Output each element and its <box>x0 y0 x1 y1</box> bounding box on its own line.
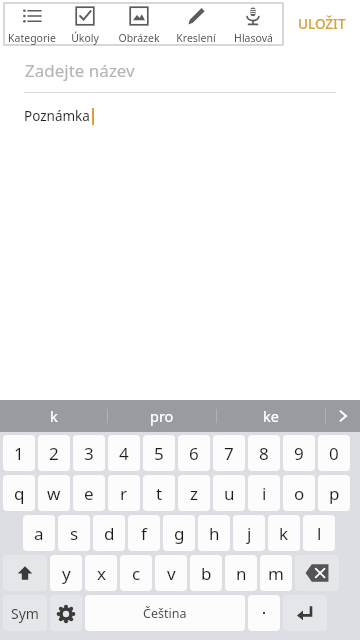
staticText: 0 <box>329 442 339 465</box>
staticText: 3 <box>84 442 94 465</box>
button[interactable]: t <box>143 475 175 511</box>
button[interactable]: 0 <box>318 435 350 471</box>
button[interactable]: k <box>268 515 300 551</box>
button[interactable]: k <box>0 400 107 432</box>
button[interactable]: Hlasová <box>225 3 281 45</box>
button[interactable]: Kategorie <box>4 3 60 45</box>
staticText: l <box>317 522 322 545</box>
button[interactable]: e <box>73 475 105 511</box>
button[interactable]: Shift <box>3 555 47 591</box>
staticText: Sym <box>11 604 39 623</box>
button[interactable]: Obrázek <box>110 3 167 45</box>
staticText: n <box>236 562 247 585</box>
button[interactable]: Enter <box>283 595 327 631</box>
staticText: a <box>34 522 44 545</box>
staticText: 1 <box>14 442 24 465</box>
staticText: Zadejte název <box>25 59 135 82</box>
staticText: r <box>120 482 128 505</box>
staticText: z <box>190 482 198 505</box>
button[interactable]: p <box>318 475 350 511</box>
button[interactable]: y <box>50 555 82 591</box>
button[interactable]: Kreslení <box>167 3 225 45</box>
staticText: Čeština <box>143 605 187 622</box>
staticText: c <box>132 562 141 585</box>
button[interactable]: j <box>233 515 265 551</box>
button[interactable]: 7 <box>213 435 245 471</box>
button[interactable]: d <box>93 515 125 551</box>
button[interactable]: Poznámka <box>0 93 360 400</box>
staticText: h <box>209 522 220 545</box>
button[interactable]: x <box>85 555 117 591</box>
staticText: 5 <box>154 442 164 465</box>
staticText: k <box>279 522 289 545</box>
button[interactable]: 8 <box>248 435 280 471</box>
button[interactable]: s <box>58 515 90 551</box>
staticText: 6 <box>189 442 199 465</box>
staticText: 9 <box>294 442 304 465</box>
button[interactable]: z <box>178 475 210 511</box>
button[interactable]: 5 <box>143 435 175 471</box>
button[interactable]: l <box>303 515 335 551</box>
button[interactable]: c <box>120 555 152 591</box>
button[interactable]: 4 <box>108 435 140 471</box>
button[interactable]: a <box>23 515 55 551</box>
staticText: v <box>167 562 176 585</box>
staticText: y <box>62 562 71 585</box>
button[interactable]: Úkoly <box>60 3 110 45</box>
staticText: p <box>329 482 340 505</box>
staticText: o <box>294 482 305 505</box>
button[interactable]: 6 <box>178 435 210 471</box>
button[interactable]: 3 <box>73 435 105 471</box>
button[interactable]: n <box>225 555 257 591</box>
button[interactable]: w <box>38 475 70 511</box>
button[interactable]: Zadejte název <box>0 48 360 92</box>
staticText: w <box>47 482 61 505</box>
button[interactable]: pro <box>108 400 216 432</box>
button[interactable]: i <box>248 475 280 511</box>
staticText: Obrázek <box>118 31 160 45</box>
staticText: ke <box>263 406 279 426</box>
button[interactable]: More suggestions <box>326 400 360 432</box>
button[interactable]: Backspace <box>295 555 339 591</box>
staticText: Úkoly <box>71 31 99 45</box>
staticText: m <box>268 562 284 585</box>
button[interactable]: Keyboard settings <box>50 595 82 631</box>
staticText: e <box>84 482 94 505</box>
staticText: k <box>50 406 58 426</box>
button[interactable]: Čeština <box>85 595 245 631</box>
staticText: q <box>14 482 25 505</box>
staticText: s <box>70 522 79 545</box>
button[interactable]: o <box>283 475 315 511</box>
button[interactable]: 9 <box>283 435 315 471</box>
button[interactable]: 2 <box>38 435 70 471</box>
button[interactable]: q <box>3 475 35 511</box>
staticText: Kategorie <box>8 31 56 45</box>
button[interactable]: h <box>198 515 230 551</box>
button[interactable]: r <box>108 475 140 511</box>
staticText: pro <box>150 406 174 426</box>
button[interactable]: v <box>155 555 187 591</box>
button[interactable]: 1 <box>3 435 35 471</box>
staticText: ULOŽIT <box>298 15 346 33</box>
staticText: f <box>141 522 147 545</box>
button[interactable]: ke <box>217 400 325 432</box>
button[interactable]: Sym <box>3 595 47 631</box>
button[interactable]: b <box>190 555 222 591</box>
staticText: Hlasová <box>234 31 273 45</box>
staticText: t <box>156 482 163 505</box>
staticText: Poznámka <box>24 107 90 125</box>
button[interactable]: g <box>163 515 195 551</box>
staticText: b <box>201 562 212 585</box>
staticText: Kreslení <box>176 31 216 45</box>
staticText: i <box>262 482 267 505</box>
button[interactable]: f <box>128 515 160 551</box>
button[interactable]: m <box>260 555 292 591</box>
staticText: u <box>224 482 235 505</box>
staticText: j <box>247 522 252 545</box>
staticText: x <box>97 562 106 585</box>
staticText: 2 <box>49 442 59 465</box>
staticText: 8 <box>259 442 269 465</box>
button[interactable]: u <box>213 475 245 511</box>
button[interactable] <box>248 595 280 631</box>
button[interactable]: ULOŽIT <box>283 0 360 48</box>
